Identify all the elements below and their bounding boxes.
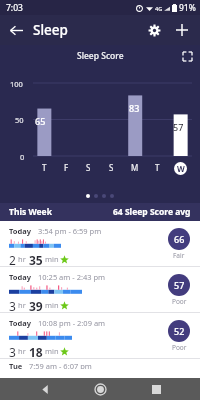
- staticText: 64 Sleep Score avg: [113, 206, 191, 218]
- staticText: 10:25 am - 2:43 pm: [38, 272, 106, 282]
- staticText: 3:54 pm - 6:59 pm: [38, 226, 102, 236]
- staticText: 57: [174, 279, 185, 291]
- staticText: Today: [9, 272, 32, 282]
- staticText: Tue: [9, 361, 23, 369]
- button[interactable]: Today: [0, 313, 200, 358]
- staticText: 18: [29, 344, 43, 358]
- staticText: 65: [35, 115, 46, 127]
- staticText: T: [42, 162, 47, 173]
- staticText: Sleep Score: [77, 50, 124, 62]
- staticText: Fair: [173, 251, 185, 260]
- button[interactable]: Today: [0, 267, 200, 312]
- button[interactable]: Recent apps: [145, 378, 167, 400]
- staticText: 3: [9, 344, 16, 358]
- staticText: This Week: [9, 206, 52, 218]
- staticText: 35: [29, 252, 43, 266]
- staticText: F: [64, 162, 69, 173]
- staticText: 39: [29, 298, 43, 312]
- staticText: 100: [10, 79, 23, 89]
- button[interactable]: Home: [89, 378, 111, 400]
- staticText: W: [177, 163, 185, 174]
- staticText: min: [45, 346, 59, 356]
- staticText: min: [45, 254, 59, 264]
- staticText: Today: [9, 226, 32, 236]
- staticText: 52: [174, 325, 185, 337]
- button[interactable]: Tue: [0, 359, 200, 369]
- button[interactable]: Expand: [178, 47, 196, 65]
- staticText: 10:08 pm - 2:09 am: [38, 318, 106, 328]
- staticText: M: [131, 162, 139, 173]
- staticText: 0: [20, 152, 25, 162]
- staticText: 83: [129, 102, 140, 114]
- staticText: Poor: [172, 343, 187, 352]
- staticText: S: [109, 162, 114, 173]
- button[interactable]: Back: [4, 18, 28, 42]
- staticText: 7:59 am - 6:07 pm: [29, 361, 92, 369]
- staticText: T: [155, 162, 160, 173]
- staticText: Poor: [172, 297, 187, 306]
- staticText: 50: [15, 115, 24, 125]
- staticText: hr: [18, 346, 26, 356]
- staticText: 91%: [179, 2, 196, 14]
- staticText: 57: [173, 121, 184, 133]
- staticText: Today: [9, 318, 32, 328]
- button[interactable]: Settings: [142, 18, 166, 42]
- staticText: hr: [18, 300, 26, 310]
- button[interactable]: Back: [34, 378, 56, 400]
- button[interactable]: Add: [170, 18, 194, 42]
- staticText: 4G: [155, 5, 163, 12]
- staticText: 3: [9, 298, 16, 312]
- staticText: 2: [9, 252, 16, 266]
- staticText: 66: [174, 233, 185, 245]
- staticText: min: [45, 300, 59, 310]
- button[interactable]: Today: [0, 221, 200, 266]
- staticText: S: [86, 162, 91, 173]
- staticText: 7:03: [6, 2, 23, 14]
- staticText: Sleep: [33, 21, 68, 39]
- staticText: hr: [18, 254, 26, 264]
